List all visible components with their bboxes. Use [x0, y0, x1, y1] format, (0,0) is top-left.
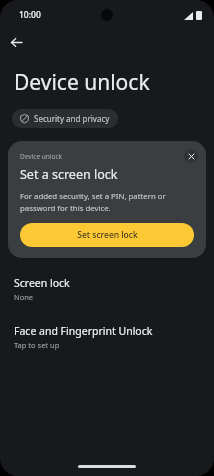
button[interactable]: Back	[4, 30, 28, 54]
staticText: Face and Fingerprint Unlock	[14, 324, 153, 338]
staticText: Device unlock	[14, 68, 150, 97]
staticText: For added security, set a PIN, pattern o…	[20, 191, 194, 213]
button[interactable]: Face and Fingerprint Unlock	[0, 322, 214, 352]
button[interactable]: Screen lock	[0, 274, 214, 304]
staticText: 10:00	[19, 9, 41, 21]
staticText: Device unlock	[20, 152, 62, 161]
button[interactable]: Security and privacy	[12, 109, 118, 128]
staticText: Set a screen lock	[20, 166, 118, 183]
staticText: None	[14, 292, 34, 302]
staticText: Screen lock	[14, 276, 70, 290]
staticText: Tap to set up	[14, 340, 60, 350]
staticText: Security and privacy	[34, 113, 110, 124]
button[interactable]: Dismiss	[184, 149, 198, 163]
staticText: Set screen lock	[77, 229, 138, 241]
button[interactable]: Set screen lock	[20, 223, 194, 247]
